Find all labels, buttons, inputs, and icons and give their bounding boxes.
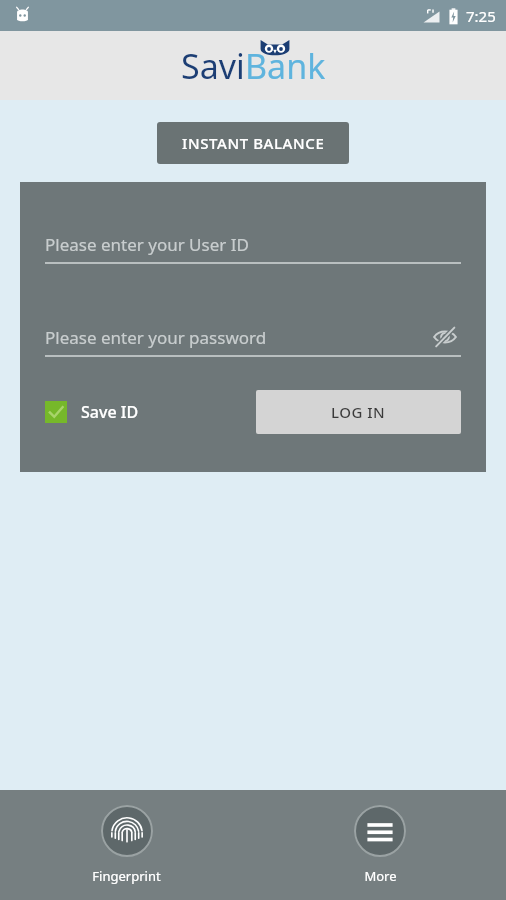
button[interactable]: LOG IN bbox=[256, 390, 461, 434]
button[interactable]: Show password bbox=[429, 321, 461, 353]
staticText: Save ID bbox=[81, 401, 139, 423]
staticText: 7:25 bbox=[466, 6, 496, 26]
staticText: Bank bbox=[245, 43, 326, 89]
button[interactable]: More bbox=[336, 799, 424, 891]
button[interactable]: Fingerprint bbox=[74, 799, 179, 891]
staticText: Please enter your password bbox=[45, 326, 267, 349]
button[interactable]: Please enter your password bbox=[45, 319, 461, 355]
staticText: INSTANT BALANCE bbox=[182, 133, 325, 153]
button[interactable]: Please enter your User ID bbox=[45, 226, 461, 262]
staticText: Savi bbox=[181, 43, 245, 89]
button[interactable]: INSTANT BALANCE bbox=[157, 122, 349, 164]
staticText: Please enter your User ID bbox=[45, 233, 249, 256]
button[interactable]: Save ID bbox=[45, 401, 139, 423]
staticText: LOG IN bbox=[331, 402, 386, 422]
staticText: More bbox=[364, 867, 397, 885]
staticText: Fingerprint bbox=[92, 867, 161, 885]
